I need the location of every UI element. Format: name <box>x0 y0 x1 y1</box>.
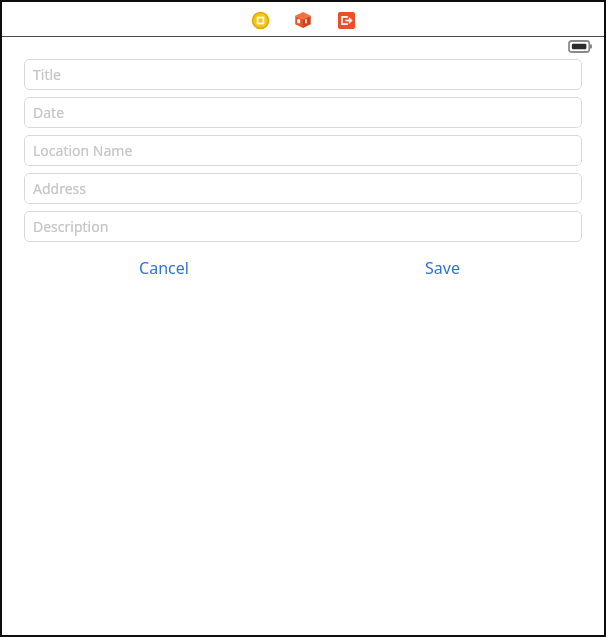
button[interactable]: Title <box>24 59 582 90</box>
button[interactable]: Date <box>24 97 582 128</box>
staticText: Title <box>33 65 61 84</box>
staticText: Location Name <box>33 141 133 160</box>
staticText: Save <box>425 257 460 279</box>
staticText: Address <box>33 179 86 198</box>
button[interactable]: Package <box>290 7 316 33</box>
staticText: Description <box>33 217 109 236</box>
button[interactable]: Description <box>24 211 582 242</box>
staticText: Date <box>33 103 65 122</box>
other: Battery <box>569 41 592 52</box>
button[interactable]: Save <box>303 250 582 286</box>
staticText: Cancel <box>139 257 189 279</box>
button[interactable]: Cancel <box>24 250 303 286</box>
button[interactable]: Log out <box>333 7 359 33</box>
button[interactable]: Address <box>24 173 582 204</box>
button[interactable]: Location Name <box>24 135 582 166</box>
button[interactable]: Coin <box>247 7 273 33</box>
